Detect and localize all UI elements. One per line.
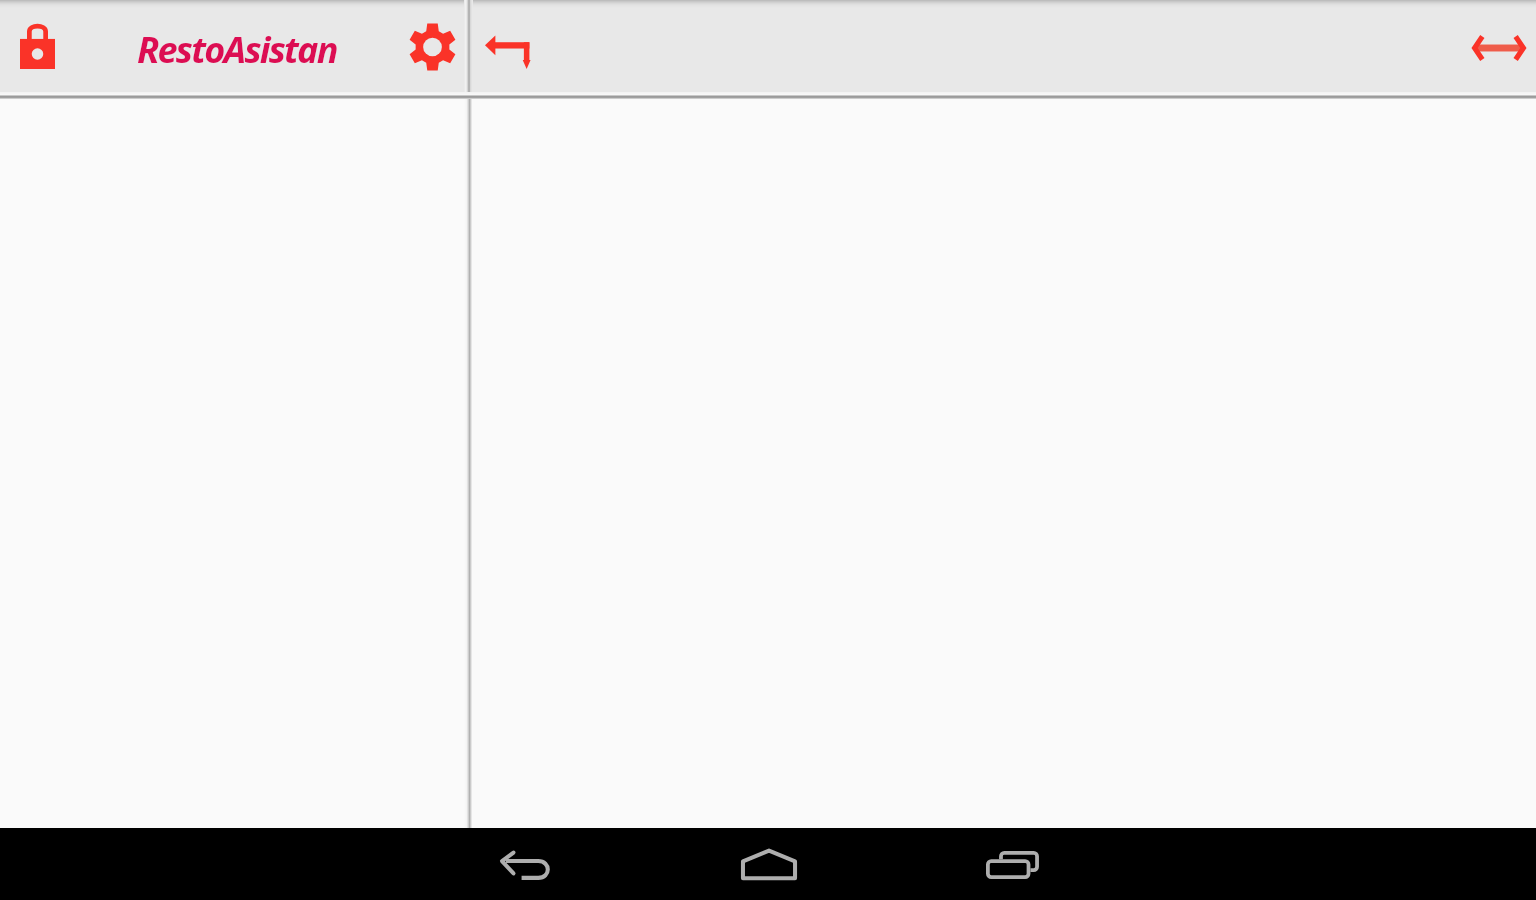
button[interactable]: Home [708, 828, 828, 900]
button[interactable]: Resize panel [1448, 0, 1536, 92]
button[interactable]: Back [465, 828, 585, 900]
button[interactable]: Recent apps [953, 828, 1073, 900]
button[interactable]: Return [472, 0, 544, 92]
button[interactable]: Settings [400, 0, 464, 92]
staticText: RestoAsistan [137, 25, 337, 74]
button[interactable]: Locked [0, 0, 78, 92]
button[interactable]: RestoAsistan [96, 0, 376, 92]
